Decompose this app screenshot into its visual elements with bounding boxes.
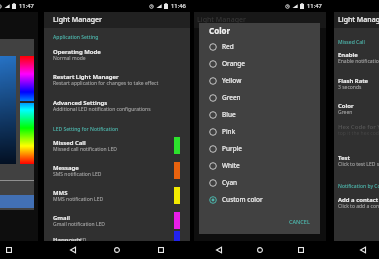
staticText: top it the hex code of your color (338, 130, 379, 137)
staticText: Light Manager (338, 15, 379, 25)
staticText: Restart Light Manager (53, 73, 119, 81)
staticText: Red (222, 42, 234, 51)
staticText: Light Manager (197, 15, 246, 25)
staticText: Gmail notification LED (53, 221, 105, 228)
button[interactable]: Cyan (209, 174, 314, 191)
staticText: LED Setting for Notification (53, 126, 119, 133)
button[interactable]: Enable (334, 45, 379, 65)
staticText: SMS notification LED (53, 171, 102, 178)
staticText: 3 seconds (338, 84, 362, 91)
staticText: Color (209, 25, 231, 36)
button[interactable]: Missed Call (44, 132, 190, 153)
button[interactable]: Back (212, 243, 226, 257)
staticText: Missed Call (53, 139, 86, 147)
button[interactable]: Recents (294, 243, 308, 257)
button[interactable]: Hangouts (44, 228, 190, 241)
staticText: White (222, 161, 240, 170)
staticText: Additional LED notification configuratio… (53, 106, 151, 113)
staticText: Flash Rate (338, 77, 369, 85)
button[interactable]: Test (334, 137, 379, 168)
staticText: Advanced Settings (53, 99, 108, 107)
staticText: Add a contact (338, 196, 379, 204)
staticText: Enable notification for missed call (338, 58, 379, 65)
staticText: Notification by Contact (338, 183, 379, 190)
staticText: Green (222, 93, 241, 102)
staticText: Custom color (222, 195, 263, 204)
button[interactable]: MMS (44, 178, 190, 203)
staticText: Blue (222, 110, 236, 119)
button[interactable]: Back (356, 243, 370, 257)
button[interactable]: Custom color (209, 191, 314, 208)
button[interactable]: Red (209, 38, 314, 55)
button[interactable]: White (209, 157, 314, 174)
staticText: Gmail (53, 214, 71, 222)
staticText: Click to test LED settings (338, 161, 379, 168)
button[interactable]: Flash Rate (334, 65, 379, 91)
button[interactable]: Color (334, 91, 379, 116)
button[interactable]: Yellow (209, 72, 314, 89)
button[interactable]: Gmail (44, 203, 190, 228)
staticText: Green (338, 109, 353, 116)
staticText: Color (338, 102, 354, 110)
button[interactable]: Add a contact (334, 189, 379, 210)
staticText: MMS notification LED (53, 196, 104, 203)
button[interactable]: Hex Code for Your Color (334, 116, 379, 137)
staticText: Missed call notification LED (53, 146, 117, 153)
staticText: CANCEL (289, 218, 310, 225)
button[interactable]: Purple (209, 140, 314, 157)
staticText: 11:47 (307, 2, 322, 10)
staticText: Orange (222, 59, 245, 68)
staticText: Pink (222, 127, 236, 136)
staticText: MMS (53, 189, 68, 197)
button[interactable]: CANCEL (285, 216, 314, 227)
staticText: 11:46 (171, 2, 186, 10)
staticText: Normal mode (53, 55, 86, 62)
staticText: Test (338, 154, 350, 162)
staticText: Hangouts (53, 236, 82, 244)
button[interactable]: Restart Light Manager (44, 62, 190, 87)
staticText: Purple (222, 144, 242, 153)
button[interactable]: Blue (209, 106, 314, 123)
staticText: Application Setting (53, 34, 99, 41)
staticText: Yellow (222, 76, 242, 85)
button[interactable]: Recents (154, 243, 168, 257)
staticText: Enable (338, 51, 358, 59)
button[interactable]: Operating Mode (44, 40, 190, 62)
staticText: Hangouts LED (53, 237, 87, 244)
staticText: Cyan (222, 178, 238, 187)
staticText: Restart application for changes to take … (53, 80, 159, 87)
staticText: Message (53, 164, 79, 172)
button[interactable]: Pink (209, 123, 314, 140)
button[interactable]: Home (253, 243, 267, 257)
staticText: Operating Mode (53, 48, 101, 56)
button[interactable]: Green (209, 89, 314, 106)
staticText: Missed Call (338, 39, 365, 46)
button[interactable]: Home (110, 243, 124, 257)
staticText: Click to add a contact (338, 203, 379, 210)
button[interactable]: Recents (2, 243, 16, 257)
button[interactable]: Advanced Settings (44, 87, 190, 113)
button[interactable]: Back (66, 243, 80, 257)
button[interactable]: Message (44, 153, 190, 178)
staticText: Light Manager (53, 15, 102, 25)
button[interactable]: Orange (209, 55, 314, 72)
staticText: Hex Code for Your Color (338, 123, 379, 131)
staticText: 11:47 (19, 2, 34, 10)
